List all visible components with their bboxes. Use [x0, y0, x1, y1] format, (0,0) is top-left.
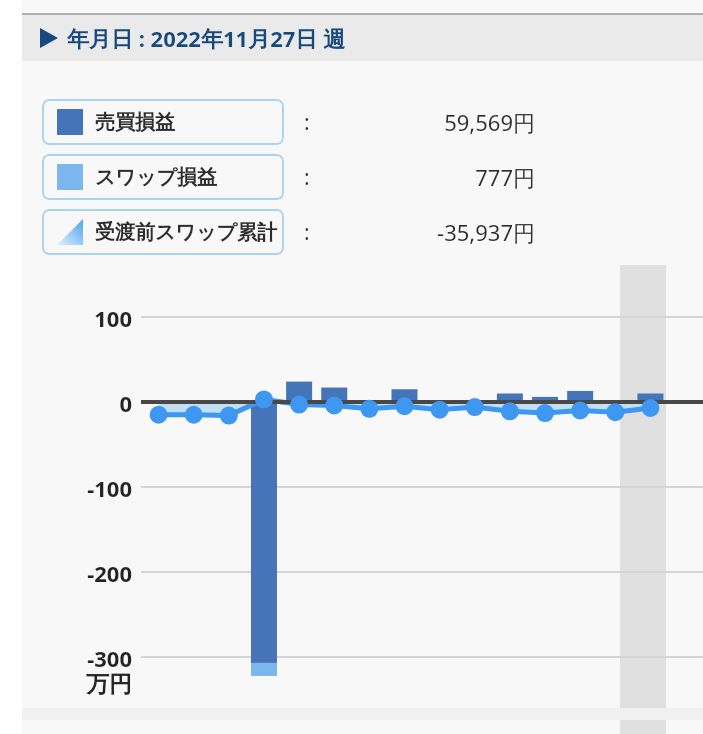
staticText: -200: [0, 558, 132, 588]
staticText: 売買損益: [95, 110, 175, 135]
button[interactable]: Expand date section: [22, 15, 703, 61]
staticText: 年月日 : 2022年11月27日 週: [67, 23, 346, 53]
button[interactable]: スワップ損益: [42, 154, 284, 200]
staticText: -35,937円: [310, 217, 535, 247]
staticText: 59,569円: [310, 107, 535, 137]
staticText: 777円: [310, 162, 535, 192]
staticText: :: [304, 163, 310, 192]
button[interactable]: 受渡前スワップ累計: [42, 209, 284, 255]
staticText: 受渡前スワップ累計: [95, 220, 277, 245]
staticText: 100: [0, 303, 132, 333]
staticText: 万円: [86, 670, 132, 699]
other: Expand date section: [40, 28, 58, 48]
staticText: :: [304, 218, 310, 247]
staticText: -300: [0, 643, 132, 673]
button[interactable]: 売買損益: [42, 99, 284, 145]
staticText: 0: [0, 388, 132, 418]
staticText: :: [304, 108, 310, 137]
staticText: -100: [0, 473, 132, 503]
staticText: スワップ損益: [95, 165, 217, 190]
